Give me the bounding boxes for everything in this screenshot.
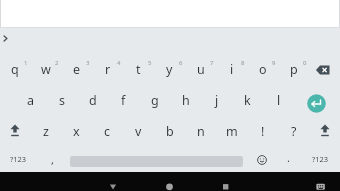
button[interactable] [309,116,340,146]
staticText: v [135,123,142,140]
button[interactable]: j [201,85,232,116]
button[interactable] [0,172,114,191]
staticText: b [166,123,174,140]
button[interactable]: i [216,53,247,85]
staticText: n [197,123,205,140]
button[interactable]: p [278,53,309,85]
staticText: l [277,92,281,109]
button[interactable]: h [170,85,201,116]
button[interactable]: t [123,53,154,85]
staticText: i [230,61,234,78]
staticText: 7 [210,59,214,67]
staticText: z [43,123,49,140]
button[interactable]: s [46,85,77,116]
button[interactable] [0,28,340,53]
button[interactable]: f [108,85,139,116]
button[interactable] [114,172,227,191]
button[interactable] [294,85,340,116]
button[interactable]: ? [278,116,309,146]
staticText: s [59,92,65,109]
staticText: f [121,92,126,109]
button[interactable]: v [123,116,154,146]
button[interactable]: e [61,53,92,85]
staticText: 9 [272,59,276,67]
staticText: 5 [148,59,152,67]
staticText: j [215,92,219,109]
staticText: 3 [86,59,90,67]
staticText: 0 [303,59,307,67]
button[interactable] [227,172,340,191]
button[interactable]: l [263,85,294,116]
staticText: k [244,92,251,109]
staticText: ? [291,123,297,140]
staticText: , [51,152,54,167]
staticText: d [89,92,97,109]
staticText: c [104,123,111,140]
button[interactable] [68,146,247,172]
staticText: ?123 [10,154,27,164]
button[interactable]: q [0,53,30,85]
staticText: u [197,61,205,78]
staticText: e [73,61,81,78]
staticText: 2 [55,59,59,67]
staticText: p [290,61,298,78]
button[interactable]: ! [247,116,278,146]
staticText: ! [261,123,265,140]
staticText: q [11,61,19,78]
button[interactable]: w [30,53,61,85]
button[interactable]: m [216,116,247,146]
button[interactable] [247,146,277,172]
staticText: 4 [117,59,121,67]
button[interactable] [309,53,340,85]
staticText: g [151,92,159,109]
staticText: y [166,61,173,78]
staticText: t [136,61,141,78]
button[interactable]: o [247,53,278,85]
button[interactable] [0,116,30,146]
button[interactable]: c [92,116,123,146]
button[interactable]: n [185,116,216,146]
staticText: a [27,92,35,109]
button[interactable]: . [277,146,300,172]
staticText: r [105,61,111,78]
button[interactable]: b [154,116,185,146]
button[interactable]: , [37,146,68,172]
staticText: ?123 [312,154,329,164]
button[interactable]: g [139,85,170,116]
button[interactable]: ?123 [300,146,340,172]
button[interactable]: y [154,53,185,85]
staticText: . [287,150,290,165]
staticText: m [226,123,238,140]
staticText: x [73,123,80,140]
button[interactable]: u [185,53,216,85]
staticText: 6 [179,59,183,67]
staticText: o [259,61,267,78]
button[interactable]: a [15,85,46,116]
staticText: 1 [24,59,28,67]
staticText: w [41,61,51,78]
button[interactable]: ?123 [0,146,37,172]
staticText: 8 [241,59,245,67]
button[interactable]: x [61,116,92,146]
button[interactable]: k [232,85,263,116]
staticText: h [182,92,190,109]
button[interactable]: r [92,53,123,85]
button[interactable]: d [77,85,108,116]
button[interactable]: z [30,116,61,146]
